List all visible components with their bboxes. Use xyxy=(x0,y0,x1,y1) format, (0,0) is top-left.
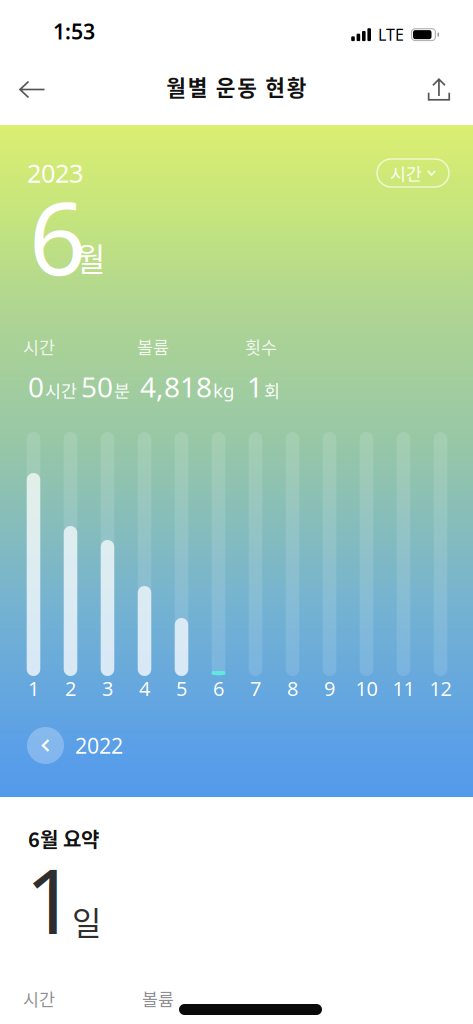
staticText: 시간 xyxy=(23,986,55,1011)
button[interactable]: Back xyxy=(10,67,54,111)
staticText: 시간 xyxy=(23,334,55,359)
staticText: 2022 xyxy=(75,731,123,760)
staticText: 9 xyxy=(324,675,335,702)
staticText: 시간 xyxy=(45,377,77,402)
staticText: 일 xyxy=(72,898,101,944)
staticText: 회 xyxy=(264,377,280,402)
staticText: 2 xyxy=(65,675,76,702)
staticText: 볼륨 xyxy=(137,334,169,359)
staticText: 5 xyxy=(176,675,187,702)
staticText: 볼륨 xyxy=(142,986,174,1011)
staticText: 8 xyxy=(287,675,298,702)
staticText: 10 xyxy=(355,675,377,702)
staticText: 6 xyxy=(213,675,224,702)
staticText: 1:53 xyxy=(53,17,95,45)
staticText: 6 xyxy=(29,170,86,303)
staticText: 6월 요약 xyxy=(28,824,99,853)
staticText: 4,818 xyxy=(140,368,212,405)
staticText: 시간 xyxy=(390,160,422,186)
staticText: LTE xyxy=(378,24,404,45)
button[interactable]: 2022 xyxy=(27,727,123,764)
staticText: 4 xyxy=(139,675,150,702)
staticText: 11 xyxy=(392,675,414,702)
button[interactable]: 시간 xyxy=(377,159,449,187)
button[interactable]: Share xyxy=(417,67,461,111)
staticText: 3 xyxy=(102,675,113,702)
staticText: 1 xyxy=(28,675,39,702)
staticText: 2023 xyxy=(27,156,83,190)
staticText: 1 xyxy=(25,840,76,959)
staticText: 50 xyxy=(81,368,113,405)
staticText: 월 xyxy=(76,234,105,280)
staticText: 분 xyxy=(114,377,130,402)
staticText: 횟수 xyxy=(245,334,277,359)
staticText: 12 xyxy=(429,675,451,702)
staticText: 7 xyxy=(250,675,261,702)
staticText: 1 xyxy=(247,368,263,405)
staticText: 0 xyxy=(28,368,44,405)
staticText: kg xyxy=(213,378,234,403)
staticText: 월별 운동 현황 xyxy=(166,71,307,102)
